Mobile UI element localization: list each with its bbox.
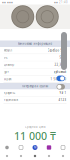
staticText: Техническая информация: [17, 42, 52, 45]
staticText: Уздеников: [3, 98, 18, 102]
button[interactable]: App: [56, 151, 70, 160]
staticText: 4123: [58, 98, 66, 102]
button[interactable]: Enabled: [56, 76, 65, 81]
button[interactable]: App: [0, 143, 14, 152]
button[interactable]: App: [0, 151, 14, 160]
staticText: 5,1 г: [59, 56, 66, 59]
button[interactable]: Тираж: [0, 76, 70, 83]
button[interactable]: App: [56, 143, 70, 152]
staticText: 22,3 мм: [54, 63, 66, 66]
staticText: Гурт: [3, 70, 8, 74]
button[interactable]: Вес: [0, 54, 70, 61]
staticText: ▪▪ ▪▪▪: [2, 1, 13, 4]
button[interactable]: Металл: [0, 47, 70, 54]
button[interactable]: Краузе №: [0, 89, 70, 97]
staticText: 11 000 ₸: [14, 129, 56, 143]
staticText: Средняя цена: [25, 125, 45, 129]
button[interactable]: App: [14, 151, 28, 160]
button[interactable]: App: [28, 143, 42, 152]
staticText: Литература и ссылки: [21, 84, 48, 88]
button[interactable]: Уздеников: [0, 97, 70, 104]
staticText: ▪▪ 21:40: [54, 0, 68, 4]
button[interactable]: App: [14, 143, 28, 152]
staticText: Металл: [3, 49, 12, 52]
button[interactable]: Гурт: [0, 69, 70, 76]
button[interactable]: App: [28, 151, 42, 160]
button[interactable]: App: [42, 151, 56, 160]
button[interactable]: Диаметр: [0, 61, 70, 69]
staticText: Y# 1: [59, 91, 66, 95]
staticText: Краузе №: [3, 91, 15, 95]
staticText: Диаметр: [3, 63, 14, 66]
button[interactable]: App: [42, 143, 56, 152]
staticText: M: [34, 146, 36, 149]
staticText: Тираж: [3, 77, 11, 81]
staticText: Серебро 900: [47, 49, 66, 52]
staticText: рубчатый: [53, 70, 66, 74]
staticText: 1 500 000: [50, 77, 66, 81]
staticText: Вес: [3, 56, 7, 59]
button[interactable]: Disabled: [56, 84, 65, 90]
